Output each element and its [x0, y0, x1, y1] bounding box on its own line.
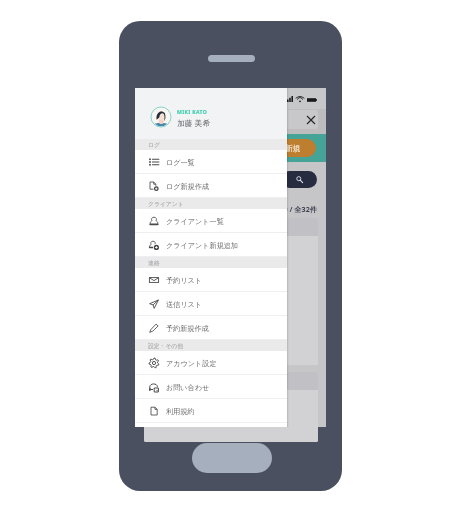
staticText: ログ	[148, 141, 160, 148]
staticText: 提案に関する詳細な情報	[149, 263, 220, 271]
staticText: 新規	[285, 143, 301, 153]
button[interactable]: お問い合わせ	[135, 375, 287, 399]
staticText: ご相談を承ります	[149, 312, 201, 320]
staticText: 送信リスト	[166, 300, 202, 309]
button[interactable]: Search	[281, 171, 317, 188]
button[interactable]: 送信リスト	[135, 292, 287, 316]
staticText: アカウント設定	[166, 359, 217, 368]
staticText: クライアント一覧	[166, 217, 224, 226]
staticText: 1-20 / 全32件	[273, 204, 317, 214]
staticText: 担当者がお伺いし象の	[149, 307, 214, 315]
staticText: 連絡	[148, 259, 160, 266]
staticText: ご予約いただいた日に	[149, 303, 214, 311]
staticText: ログ新規作成	[166, 182, 209, 191]
staticText: ログ一覧	[166, 158, 195, 167]
button[interactable]: クライアントの氏名や改善	[144, 218, 318, 365]
button[interactable]: クライアント新規追加	[135, 233, 287, 257]
button[interactable]: ログ新規作成	[135, 174, 287, 198]
staticText: MIKI KATO	[177, 109, 208, 116]
staticText: クライアント	[148, 200, 184, 207]
button[interactable]: アカウント設定	[135, 351, 287, 375]
staticText: 利用規約	[166, 407, 195, 416]
button[interactable]	[144, 372, 318, 442]
staticText: 予約リスト	[166, 276, 202, 285]
button[interactable]: 予約リスト	[135, 268, 287, 292]
staticText: お問い合わせ	[166, 383, 210, 392]
button[interactable]: Close menu	[284, 110, 318, 129]
staticText: 予約新規作成	[166, 324, 209, 333]
button[interactable]: 予約新規作成	[135, 316, 287, 340]
staticText: クライアント新規追加	[166, 241, 238, 250]
button[interactable]: 新規	[258, 139, 316, 157]
staticText: 加藤 美希	[177, 118, 211, 129]
button[interactable]: クライアント一覧	[135, 209, 287, 233]
staticText: 設定・その他	[148, 342, 184, 349]
button[interactable]: ログ一覧	[135, 150, 287, 174]
staticText: クライアントの氏名や改善	[149, 259, 227, 267]
button[interactable]: 利用規約	[135, 399, 287, 423]
